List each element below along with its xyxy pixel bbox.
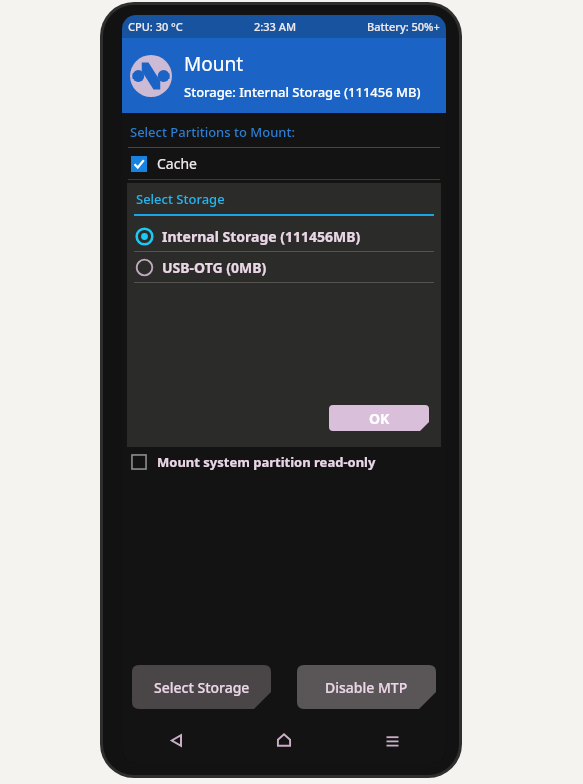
staticText: Internal Storage (111456MB) bbox=[162, 227, 361, 246]
staticText: System bbox=[157, 186, 205, 205]
staticText: Mount bbox=[184, 51, 244, 77]
staticText: USB-OTG (0MB) bbox=[162, 258, 267, 277]
staticText: 2:33 AM bbox=[183, 19, 367, 34]
button[interactable]: Internal Storage (111456MB) bbox=[127, 221, 441, 251]
button[interactable]: Disable MTP bbox=[297, 665, 436, 709]
button[interactable]: Select Storage bbox=[132, 665, 271, 709]
button[interactable]: System bbox=[122, 180, 446, 211]
staticText: Disable MTP bbox=[325, 678, 408, 697]
button[interactable]: OK bbox=[329, 405, 429, 431]
staticText: Battery: 50%+ bbox=[367, 19, 440, 34]
button[interactable]: Back bbox=[122, 717, 230, 763]
staticText: CPU: 30 °C bbox=[128, 19, 183, 34]
button[interactable]: Menu bbox=[338, 717, 446, 763]
staticText: Select Partitions to Mount: bbox=[130, 123, 295, 141]
staticText: Mount system partition read-only bbox=[157, 453, 376, 471]
button[interactable]: Home bbox=[230, 717, 338, 763]
staticText: OK bbox=[369, 409, 390, 428]
staticText: Select Storage bbox=[136, 190, 225, 208]
staticText: Storage: Internal Storage (111456 MB) bbox=[184, 83, 421, 101]
button[interactable]: Cache bbox=[122, 148, 446, 179]
staticText: Cache bbox=[157, 154, 197, 173]
staticText: Select Storage bbox=[154, 678, 250, 697]
button[interactable]: USB-OTG (0MB) bbox=[127, 252, 441, 282]
button[interactable]: Mount system partition read-only bbox=[122, 449, 446, 475]
